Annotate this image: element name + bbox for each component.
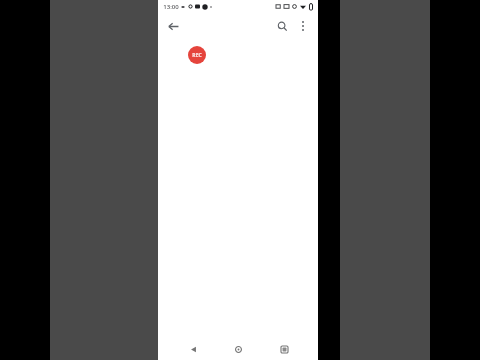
button[interactable]: More options [294, 17, 312, 35]
button[interactable]: Recent apps [273, 338, 295, 360]
button[interactable]: Home [227, 338, 249, 360]
staticText: 13:00 [163, 3, 179, 11]
button[interactable]: Search [272, 16, 292, 36]
staticText: REC [192, 52, 202, 59]
button[interactable]: Account avatar [188, 46, 206, 64]
button[interactable]: Back [182, 338, 204, 360]
button[interactable]: Back [164, 17, 182, 35]
